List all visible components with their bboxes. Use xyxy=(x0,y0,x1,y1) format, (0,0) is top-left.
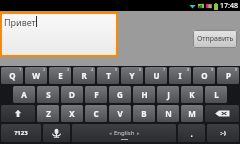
staticText: H xyxy=(141,89,148,100)
button[interactable]: Backspace xyxy=(205,105,239,122)
staticText: :-) xyxy=(220,129,226,137)
staticText: N xyxy=(165,108,172,119)
button[interactable]: O xyxy=(193,67,215,84)
staticText: R xyxy=(81,70,87,81)
staticText: Q xyxy=(9,70,16,81)
button[interactable]: Space, English xyxy=(72,124,176,142)
staticText: F xyxy=(94,89,99,100)
button[interactable]: Отправить xyxy=(193,30,237,48)
button[interactable]: S xyxy=(37,86,59,103)
button[interactable]: G xyxy=(109,86,131,103)
staticText: E xyxy=(58,70,63,81)
staticText: 2 xyxy=(43,67,46,72)
button[interactable]: Y xyxy=(121,67,143,84)
staticText: ▸ xyxy=(137,130,140,136)
button[interactable]: Привет xyxy=(2,14,116,55)
staticText: 8 xyxy=(187,67,190,72)
button[interactable]: T xyxy=(97,67,119,84)
button[interactable]: L xyxy=(205,86,227,103)
staticText: X xyxy=(69,108,75,119)
button[interactable]: B xyxy=(133,105,155,122)
button[interactable]: W xyxy=(25,67,47,84)
button[interactable]: F xyxy=(85,86,107,103)
button[interactable]: Voice input xyxy=(43,124,70,142)
button[interactable]: Shift xyxy=(1,105,35,122)
button[interactable]: D xyxy=(61,86,83,103)
button[interactable]: Z xyxy=(37,105,59,122)
button[interactable]: U xyxy=(145,67,167,84)
staticText: English xyxy=(114,129,135,137)
button[interactable]: J xyxy=(157,86,179,103)
button[interactable]: R xyxy=(73,67,95,84)
staticText: S xyxy=(46,89,51,100)
staticText: A xyxy=(21,89,27,100)
button[interactable]: P xyxy=(217,67,239,84)
staticText: I xyxy=(178,70,182,81)
button[interactable]: I xyxy=(169,67,191,84)
staticText: C xyxy=(93,108,99,119)
staticText: L xyxy=(214,89,219,100)
staticText: K xyxy=(189,89,195,100)
staticText: B xyxy=(141,108,147,119)
staticText: M xyxy=(188,108,196,119)
staticText: Y xyxy=(129,70,135,81)
button[interactable]: V xyxy=(109,105,131,122)
button[interactable]: N xyxy=(157,105,179,122)
staticText: 17:48 xyxy=(220,1,238,11)
staticText: 0 xyxy=(235,67,238,72)
staticText: P xyxy=(226,70,231,81)
button[interactable]: H xyxy=(133,86,155,103)
staticText: 5 xyxy=(115,67,118,72)
staticText: ?123 xyxy=(14,129,28,137)
staticText: T xyxy=(106,70,111,81)
button[interactable]: A xyxy=(13,86,35,103)
staticText: 9 xyxy=(211,67,214,72)
button[interactable]: C xyxy=(85,105,107,122)
staticText: O xyxy=(201,70,208,81)
staticText: ◂ xyxy=(109,130,112,136)
button[interactable]: Q xyxy=(1,67,23,84)
staticText: 6 xyxy=(139,67,142,72)
staticText: U xyxy=(153,70,160,81)
button[interactable]: X xyxy=(61,105,83,122)
button[interactable]: M xyxy=(181,105,203,122)
staticText: J xyxy=(167,89,170,100)
staticText: 7 xyxy=(163,67,166,72)
button[interactable]: :-) xyxy=(207,124,239,142)
staticText: Привет xyxy=(4,16,36,28)
staticText: Z xyxy=(46,108,51,119)
staticText: G xyxy=(117,89,123,100)
staticText: 1 xyxy=(19,67,22,72)
staticText: W xyxy=(32,70,40,81)
button[interactable]: . xyxy=(178,124,205,142)
button[interactable]: K xyxy=(181,86,203,103)
button[interactable]: E xyxy=(49,67,71,84)
button[interactable]: ?123 xyxy=(1,124,41,142)
staticText: 3 xyxy=(67,67,70,72)
staticText: V xyxy=(117,108,123,119)
staticText: D xyxy=(69,89,75,100)
staticText: 4 xyxy=(91,67,94,72)
staticText: . xyxy=(190,128,193,139)
staticText: Отправить xyxy=(197,34,234,44)
